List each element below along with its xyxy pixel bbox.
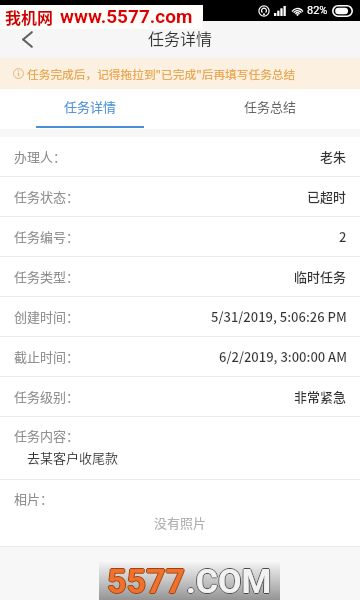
staticText: 2 — [339, 227, 347, 246]
staticText: 5577 — [107, 560, 186, 600]
staticText: .COM — [186, 562, 272, 600]
button[interactable]: 任务状态： — [0, 177, 360, 217]
staticText: 任务类型： — [14, 267, 80, 286]
staticText: 创建时间： — [14, 307, 80, 326]
staticText: 老朱 — [320, 147, 347, 166]
staticText: 5/31/2019, 5:06:26 PM — [211, 307, 347, 326]
staticText: www.5577.com — [60, 5, 193, 27]
staticText: 相片： — [14, 489, 54, 508]
button[interactable]: 任务编号： — [0, 217, 360, 257]
staticText: 任务完成后，记得拖拉到"已完成"后再填写任务总结 — [27, 65, 296, 82]
staticText: 截止时间： — [14, 347, 80, 366]
staticText: 5577 — [106, 561, 185, 600]
button[interactable]: 任务级别： — [0, 377, 360, 417]
staticText: 5577 — [107, 562, 186, 600]
staticText: 任务内容： — [14, 426, 80, 445]
staticText: 任务状态： — [14, 187, 80, 206]
staticText: 去某客户收尾款 — [27, 448, 119, 467]
staticText: .COM — [185, 561, 271, 600]
staticText: 任务总结 — [244, 97, 297, 116]
staticText: 任务级别： — [14, 387, 80, 406]
staticText: 任务详情 — [64, 97, 117, 116]
staticText: 5577 — [108, 561, 187, 600]
button[interactable]: 任务内容： — [0, 417, 360, 480]
staticText: .COM — [187, 561, 273, 600]
staticText: 任务编号： — [14, 227, 80, 246]
button[interactable]: Back — [0, 21, 50, 58]
button[interactable]: 截止时间： — [0, 337, 360, 377]
button[interactable]: 创建时间： — [0, 297, 360, 337]
staticText: 非常紧急 — [294, 387, 347, 406]
button[interactable]: 任务类型： — [0, 257, 360, 297]
staticText: 5577 — [107, 561, 186, 600]
staticText: 临时任务 — [294, 267, 347, 286]
staticText: 任务详情 — [148, 26, 213, 49]
staticText: .COM — [186, 560, 272, 600]
staticText: 已超时 — [307, 187, 347, 206]
button[interactable]: 办理人： — [0, 137, 360, 177]
button[interactable]: 任务详情 — [0, 89, 180, 129]
staticText: .COM — [186, 561, 272, 600]
button[interactable]: 相片： — [0, 480, 360, 547]
staticText: 办理人： — [14, 147, 67, 166]
staticText: 82% — [307, 4, 328, 17]
button[interactable]: 任务总结 — [180, 89, 360, 129]
staticText: 6/2/2019, 3:00:00 AM — [219, 347, 347, 366]
staticText: 我机网 — [5, 5, 54, 28]
staticText: 没有照片 — [154, 513, 207, 532]
